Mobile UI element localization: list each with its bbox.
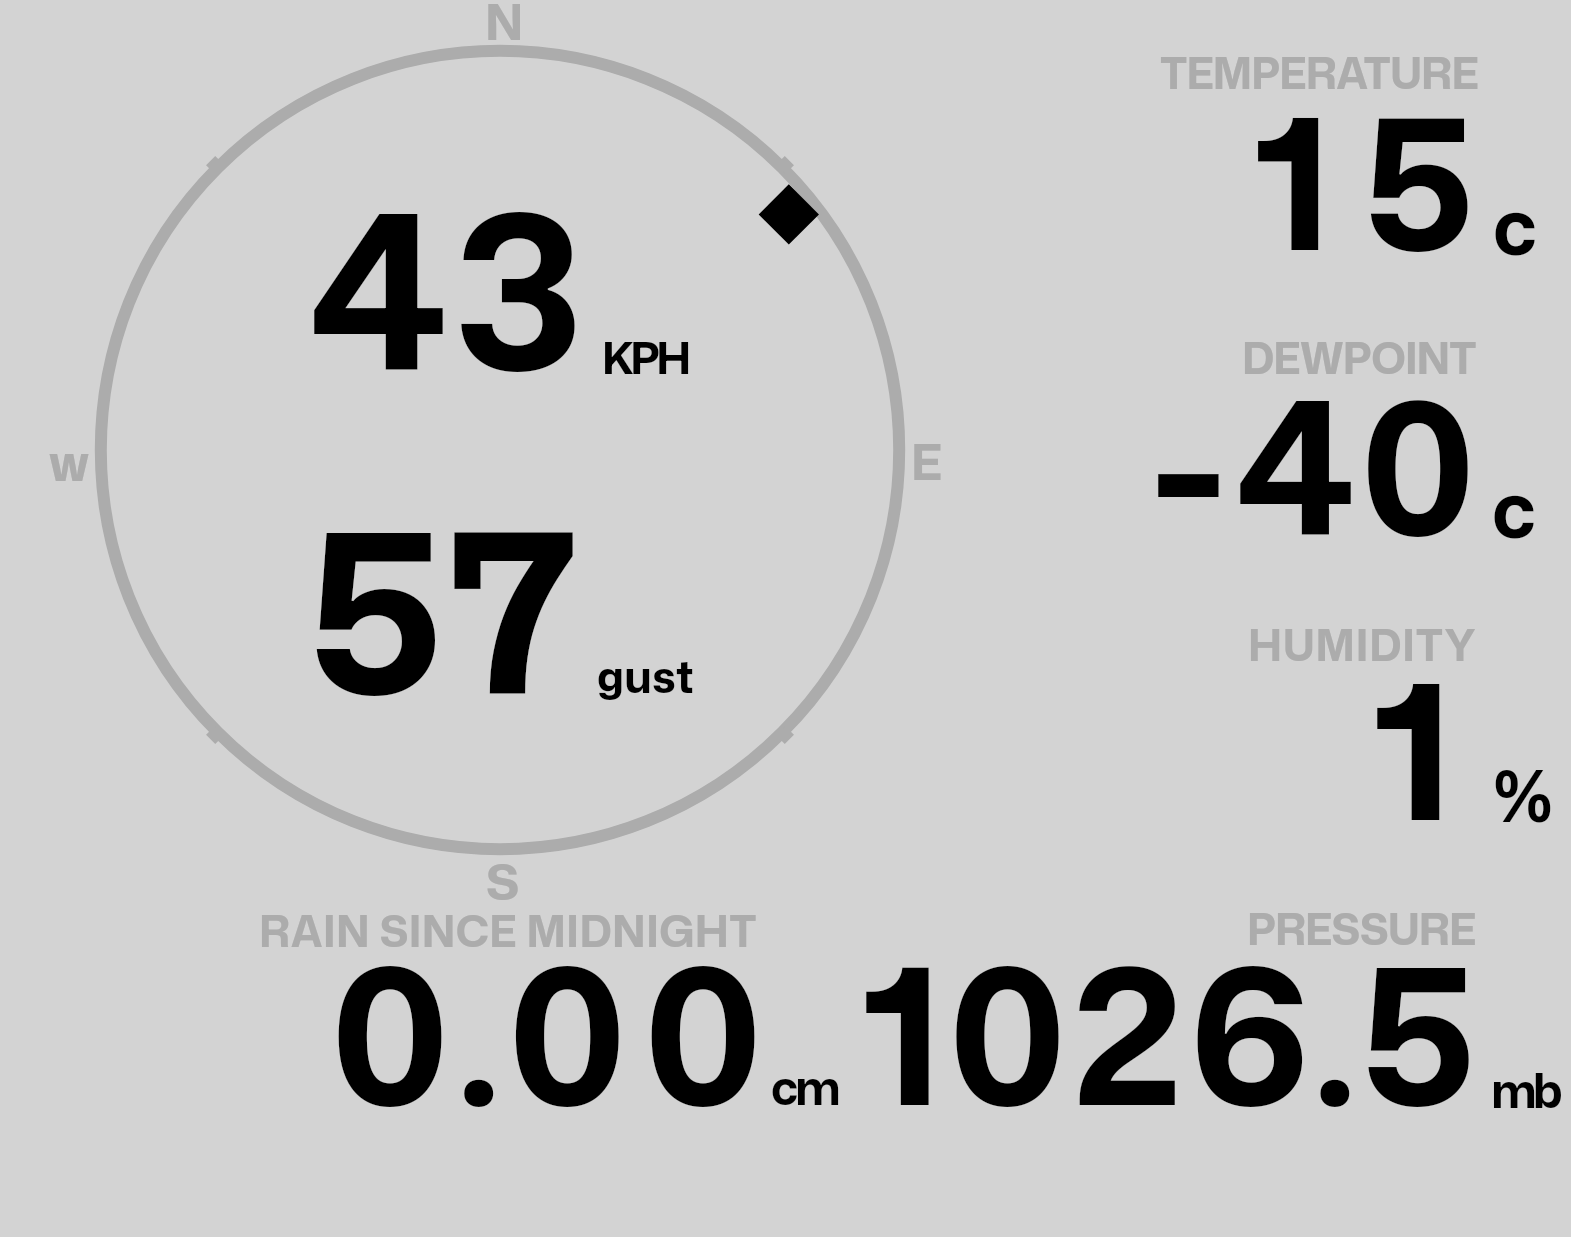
staticText: cm: [771, 1054, 838, 1120]
staticText: PRESSURE: [1247, 898, 1476, 959]
button[interactable]: Wind 43 KPH, gust 57, direction north-ea…: [60, 20, 940, 900]
staticText: c: [1493, 172, 1537, 279]
staticText: KPH: [602, 326, 688, 388]
staticText: 1026.5: [862, 898, 1483, 1166]
staticText: TEMPERATURE: [1160, 42, 1478, 103]
staticText: %: [1492, 744, 1554, 846]
staticText: mb: [1491, 1057, 1559, 1123]
button[interactable]: Pressure 1026.5 mb: [1100, 880, 1560, 1120]
staticText: c: [1492, 455, 1536, 562]
staticText: 0.00: [331, 897, 776, 1166]
staticText: RAIN SINCE MIDNIGHT: [259, 900, 757, 961]
staticText: w: [49, 426, 90, 497]
staticText: gust: [597, 645, 694, 707]
staticText: 57: [308, 450, 582, 766]
button[interactable]: Dewpoint -40 C: [1100, 310, 1560, 560]
staticText: -40: [1150, 333, 1479, 594]
staticText: N: [485, 0, 524, 56]
staticText: DEWPOINT: [1242, 327, 1476, 388]
staticText: HUMIDITY: [1248, 614, 1477, 675]
staticText: E: [911, 427, 943, 496]
button[interactable]: Humidity 1 percent: [1100, 595, 1560, 845]
staticText: S: [486, 845, 520, 916]
button[interactable]: Temperature 15 C: [1100, 30, 1560, 275]
staticText: 1: [1373, 614, 1453, 880]
staticText: 43: [309, 136, 590, 439]
button[interactable]: Rain since midnight 0.00 cm: [240, 880, 860, 1120]
staticText: 15: [1254, 51, 1508, 309]
